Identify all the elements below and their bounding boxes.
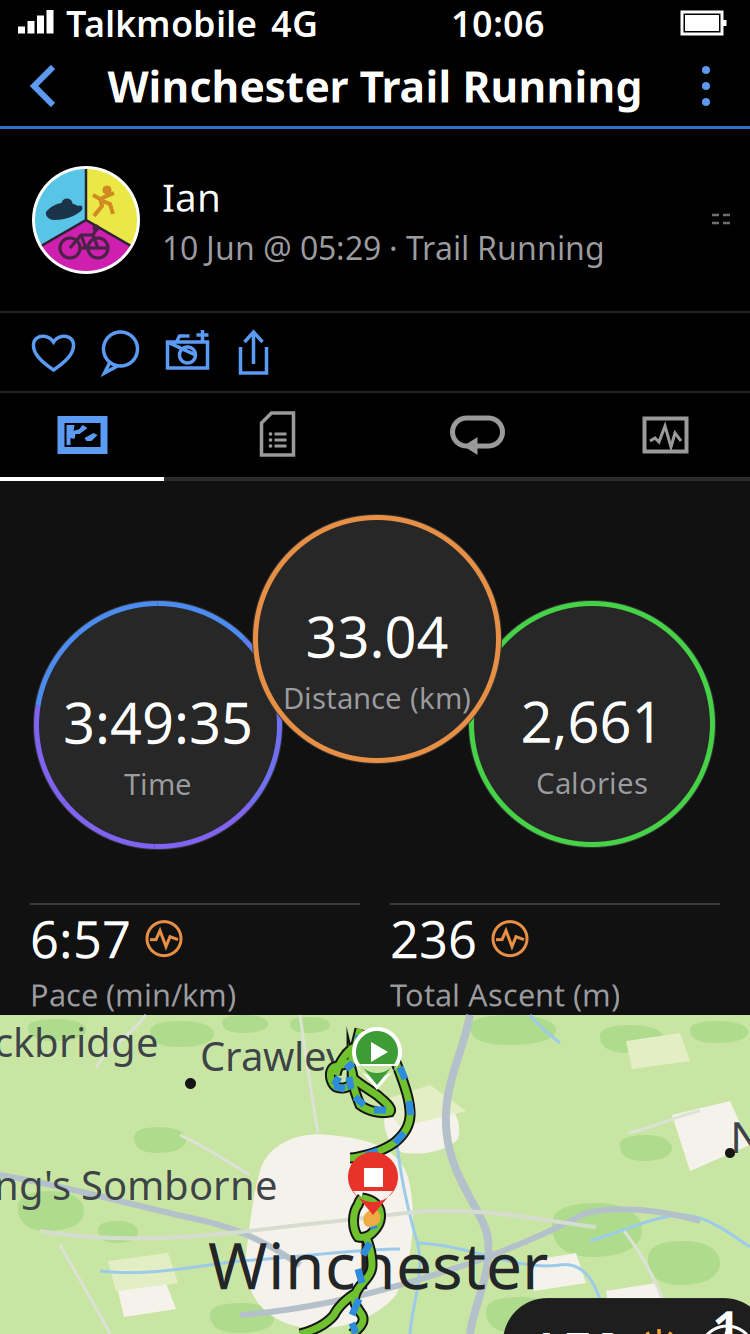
staticText: ng's Somborne: [0, 1158, 278, 1211]
button[interactable]: Charts: [562, 393, 749, 477]
button[interactable]: Comment: [87, 313, 154, 391]
staticText: Crawley: [200, 1029, 346, 1082]
button[interactable]: Map: [1, 393, 188, 477]
button[interactable]: Back: [0, 46, 88, 126]
staticText: 2,661: [520, 684, 663, 758]
staticText: Ian: [162, 171, 221, 222]
staticText: Talkmobile: [66, 0, 257, 47]
staticText: 15°: [527, 1314, 620, 1334]
staticText: ckbridge: [0, 1015, 159, 1068]
staticText: Time: [124, 764, 192, 803]
staticText: Total Ascent (m): [390, 974, 620, 1015]
staticText: 10 Jun @ 05:29 · Trail Running: [162, 226, 605, 269]
button[interactable]: Add photo: [154, 313, 221, 391]
button[interactable]: Like: [20, 313, 87, 391]
staticText: Pace (min/km): [30, 974, 236, 1015]
staticText: Winchester: [208, 1222, 548, 1307]
staticText: 33.04: [305, 599, 448, 673]
button[interactable]: More options: [662, 46, 750, 126]
staticText: N: [730, 1107, 750, 1165]
staticText: 236: [390, 905, 477, 972]
button[interactable]: Share: [221, 313, 288, 391]
staticText: Calories: [536, 763, 648, 802]
staticText: Distance (km): [283, 678, 471, 717]
staticText: 3:49:35: [63, 685, 253, 759]
button[interactable]: Splits: [188, 393, 375, 477]
button[interactable]: Laps: [375, 393, 562, 477]
staticText: 12: [711, 1294, 742, 1334]
staticText: 10:06: [451, 0, 545, 47]
staticText: Winchester Trail Running: [107, 58, 642, 114]
staticText: 4G: [271, 0, 318, 47]
staticText: 6:57: [30, 905, 131, 972]
